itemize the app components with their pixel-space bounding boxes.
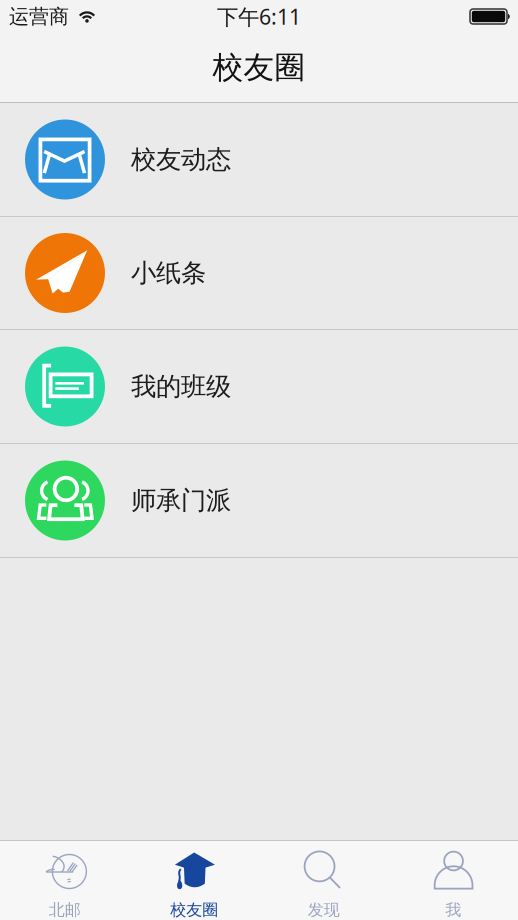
button[interactable]: 发现 <box>259 841 388 920</box>
staticText: 校友动态 <box>131 144 231 175</box>
staticText: 北邮 <box>49 900 81 920</box>
staticText: 校友圈 <box>212 49 305 86</box>
button[interactable]: 北邮 <box>0 841 129 920</box>
staticText: 我的班级 <box>131 371 231 402</box>
button[interactable]: 我 <box>388 841 518 920</box>
button[interactable]: 师承门派 <box>0 444 518 557</box>
button[interactable]: 小纸条 <box>0 217 518 329</box>
staticText: 我 <box>445 900 461 920</box>
button[interactable]: 校友圈 <box>129 841 259 920</box>
staticText: 小纸条 <box>131 257 206 288</box>
button[interactable]: 校友动态 <box>0 103 518 216</box>
staticText: 下午6:11 <box>217 2 301 31</box>
staticText: 师承门派 <box>131 485 231 516</box>
button[interactable]: 我的班级 <box>0 330 518 443</box>
staticText: 运营商 <box>9 4 69 29</box>
staticText: 校友圈 <box>170 900 218 920</box>
staticText: 发现 <box>308 900 340 920</box>
